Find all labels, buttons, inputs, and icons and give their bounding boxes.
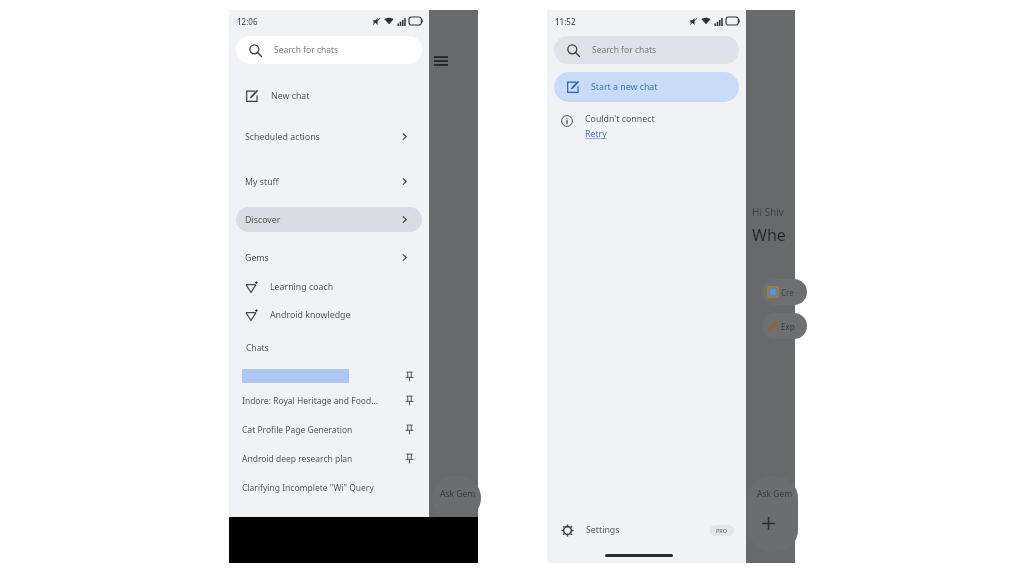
staticText: Android knowledge [270, 309, 351, 321]
staticText: Exp [781, 321, 795, 332]
staticText: Cat Profile Page Generation [242, 424, 398, 436]
staticText: Discover [245, 214, 281, 226]
staticText: Search for chats [274, 44, 339, 56]
staticText: My stuff [245, 176, 279, 188]
staticText: Android deep research plan [242, 453, 398, 465]
button[interactable] [229, 366, 429, 386]
staticText: Learning coach [270, 281, 334, 293]
button[interactable]: Add [760, 515, 777, 532]
button[interactable]: Settings [547, 513, 746, 547]
staticText: Start a new chat [591, 81, 658, 93]
staticText: Chats [246, 342, 269, 354]
button[interactable]: Android deep research plan [229, 444, 429, 473]
staticText: Hi Shiv [752, 205, 784, 219]
button[interactable]: Clarifying Incomplete "Wi" Query [229, 473, 429, 502]
staticText: Retry [585, 128, 607, 140]
button[interactable]: Search for chats [236, 36, 422, 64]
staticText: Search for chats [592, 44, 657, 56]
staticText: Ask Gem [440, 488, 476, 500]
button[interactable]: Learning coach [229, 276, 429, 298]
button[interactable]: Cat Profile Page Generation [229, 415, 429, 444]
staticText: Gems [245, 252, 269, 264]
button[interactable]: Android knowledge [229, 304, 429, 326]
staticText: Ask Gem [757, 488, 793, 500]
staticText: Couldn't connect [585, 113, 655, 125]
staticText: Settings [586, 524, 620, 536]
button[interactable]: Retry [585, 128, 607, 140]
button[interactable]: Scheduled actions [236, 124, 422, 149]
button[interactable]: Indore: Royal Heritage and Food... [229, 386, 429, 415]
staticText: New chat [271, 90, 310, 102]
staticText: Cre [781, 287, 794, 298]
staticText: Scheduled actions [245, 131, 320, 143]
button[interactable]: Search for chats [554, 36, 739, 64]
button[interactable]: Gems [236, 245, 422, 270]
button[interactable]: Start a new chat [554, 72, 739, 102]
staticText: Whe [752, 224, 786, 246]
staticText: Indore: Royal Heritage and Food... [242, 395, 398, 407]
staticText: 12:06 [237, 16, 258, 27]
button[interactable]: Discover [236, 207, 422, 232]
button[interactable]: My stuff [236, 169, 422, 194]
button[interactable]: New chat [229, 85, 429, 107]
staticText: Clarifying Incomplete "Wi" Query [242, 482, 415, 494]
staticText: PRO [716, 527, 728, 534]
staticText: 11:52 [555, 16, 576, 27]
